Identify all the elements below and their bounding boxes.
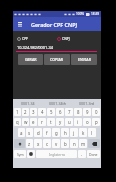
staticText: e — [32, 119, 35, 125]
button[interactable]: d — [34, 128, 42, 137]
button[interactable]: 8 — [74, 108, 82, 116]
staticText: 0001-3rd — [79, 101, 95, 106]
button[interactable]: 5 — [47, 108, 55, 116]
staticText: h — [64, 130, 67, 136]
staticText: CNPJ — [62, 36, 70, 41]
staticText: a — [20, 130, 23, 136]
button[interactable]: q — [14, 118, 21, 126]
button[interactable]: c — [43, 139, 51, 148]
button[interactable]: z — [26, 139, 33, 148]
staticText: d — [37, 130, 40, 136]
button[interactable]: 0001-34 — [13, 99, 43, 107]
staticText: 0001-34 — [21, 101, 35, 106]
staticText: Sym — [17, 152, 24, 157]
staticText: y — [59, 119, 62, 125]
staticText: r — [41, 119, 43, 125]
staticText: u — [68, 119, 71, 125]
button[interactable]: e — [30, 118, 37, 126]
staticText: CPF — [22, 36, 28, 41]
button[interactable]: 9 — [83, 108, 91, 116]
button[interactable]: r — [38, 118, 46, 126]
button[interactable]: i — [74, 118, 82, 126]
staticText: 0001-34th — [49, 101, 67, 106]
button[interactable]: s — [26, 128, 33, 137]
staticText: x — [37, 141, 40, 147]
staticText: s — [28, 130, 31, 136]
staticText: Gerador CPF CNPJ — [31, 21, 78, 28]
staticText: q — [16, 119, 19, 125]
button[interactable]: w — [22, 118, 29, 126]
button[interactable]: a — [18, 128, 25, 137]
staticText: 100% — [76, 12, 85, 16]
staticText: Done — [89, 152, 98, 157]
button[interactable]: x — [34, 139, 42, 148]
staticText: k — [82, 130, 85, 136]
button[interactable]: Backspace — [88, 139, 100, 148]
staticText: COPIAR — [50, 57, 64, 62]
staticText: 2 — [24, 109, 27, 115]
button[interactable]: y — [56, 118, 64, 126]
staticText: 3 — [32, 109, 35, 115]
staticText: c — [46, 141, 49, 147]
staticText: n — [73, 141, 76, 147]
button[interactable]: b — [61, 139, 69, 148]
button[interactable]: 2 — [22, 108, 29, 116]
staticText: 6 — [59, 109, 62, 115]
button[interactable]: 0001-34th — [43, 99, 72, 107]
button[interactable]: CPF — [17, 35, 28, 42]
button[interactable]: o — [83, 118, 91, 126]
button[interactable]: h — [61, 128, 69, 137]
staticText: 18:39 — [91, 12, 100, 16]
button[interactable]: g — [52, 128, 60, 137]
button[interactable]: t — [47, 118, 55, 126]
button[interactable]: 0001-3rd — [72, 99, 101, 107]
staticText: 10.324.982/0001-34 — [17, 45, 53, 50]
button[interactable]: 0 — [92, 108, 100, 116]
button[interactable]: . — [78, 150, 86, 158]
button[interactable]: COPIAR — [44, 54, 70, 65]
staticText: GERAR — [25, 57, 37, 62]
button[interactable]: Emoji — [27, 150, 35, 158]
staticText: 5 — [50, 109, 53, 115]
button[interactable]: u — [65, 118, 73, 126]
button[interactable]: m — [79, 139, 87, 148]
button[interactable]: j — [70, 128, 78, 137]
button[interactable]: 6 — [56, 108, 64, 116]
staticText: 1 — [16, 109, 19, 115]
button[interactable]: Sym — [14, 150, 26, 158]
staticText: z — [28, 141, 31, 147]
staticText: j — [73, 130, 75, 136]
button[interactable]: l — [88, 128, 96, 137]
button[interactable]: n — [70, 139, 78, 148]
button[interactable]: 7 — [65, 108, 73, 116]
button[interactable]: p — [92, 118, 100, 126]
staticText: m — [81, 141, 86, 147]
staticText: . — [81, 151, 83, 157]
button[interactable]: f — [43, 128, 51, 137]
button[interactable]: ENVIAR — [71, 54, 97, 65]
staticText: i — [77, 119, 79, 125]
button[interactable]: Menu — [13, 17, 26, 31]
staticText: 7 — [68, 109, 71, 115]
staticText: 0 — [95, 109, 98, 115]
button[interactable]: CNPJ — [57, 35, 70, 42]
staticText: f — [46, 130, 48, 136]
button[interactable]: GERAR — [18, 54, 43, 65]
button[interactable]: k — [79, 128, 87, 137]
button[interactable]: Inglaterra — [36, 150, 77, 158]
button[interactable]: 4 — [38, 108, 46, 116]
button[interactable]: Done — [87, 150, 100, 158]
staticText: p — [95, 119, 98, 125]
staticText: g — [55, 130, 58, 136]
button[interactable]: 1 — [14, 108, 21, 116]
staticText: 8 — [77, 109, 80, 115]
staticText: t — [50, 119, 52, 125]
staticText: 9 — [86, 109, 89, 115]
staticText: o — [86, 119, 89, 125]
staticText: b — [64, 141, 67, 147]
button[interactable]: v — [52, 139, 60, 148]
button[interactable]: 3 — [30, 108, 37, 116]
button[interactable]: Shift — [14, 139, 25, 148]
staticText: v — [55, 141, 58, 147]
staticText: ENVIAR — [78, 57, 91, 62]
